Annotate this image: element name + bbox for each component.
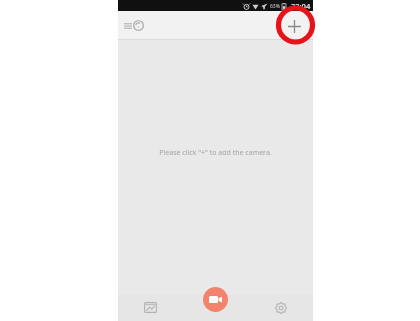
button[interactable]: Settings (248, 294, 313, 321)
button[interactable]: Add camera (281, 13, 307, 39)
button[interactable]: Gallery (118, 294, 183, 321)
staticText: 23:04 (291, 1, 311, 11)
staticText: 63% (270, 3, 280, 10)
button[interactable]: Record video (203, 287, 228, 312)
button[interactable]: Menu (122, 16, 146, 35)
staticText: Please click "+" to add the camera. (159, 148, 272, 158)
